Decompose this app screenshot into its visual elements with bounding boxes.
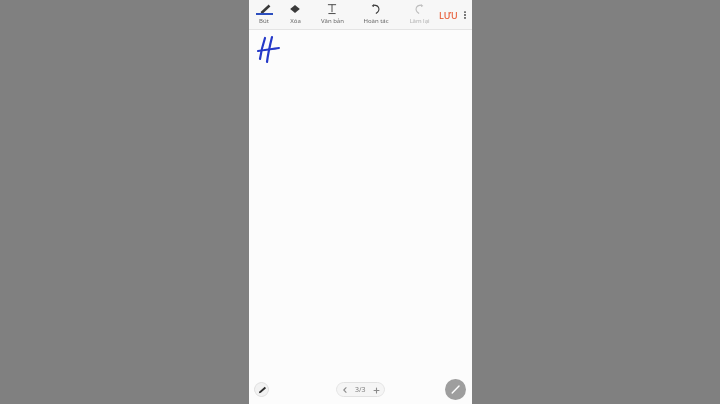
staticText: 3/3	[355, 385, 366, 395]
button[interactable]: More options	[458, 0, 472, 30]
button[interactable]: Pen settings	[254, 382, 269, 397]
staticText: Văn bản	[321, 17, 344, 25]
button[interactable]: LƯU	[439, 0, 458, 30]
staticText: Hoàn tác	[363, 17, 389, 25]
button[interactable]: Bút	[249, 0, 279, 30]
staticText: Xóa	[290, 17, 301, 25]
button[interactable]: Xóa	[279, 0, 311, 30]
staticText: LƯU	[439, 9, 458, 21]
staticText: Bút	[259, 17, 269, 25]
button[interactable]: Edit	[445, 379, 466, 400]
button[interactable]: Add page	[370, 384, 382, 396]
button[interactable]: Làm lại	[399, 0, 439, 30]
staticText: Làm lại	[409, 17, 430, 25]
button[interactable]: Previous page	[339, 384, 351, 396]
button[interactable]: Văn bản	[311, 0, 353, 30]
button[interactable]: Hoàn tác	[353, 0, 399, 30]
